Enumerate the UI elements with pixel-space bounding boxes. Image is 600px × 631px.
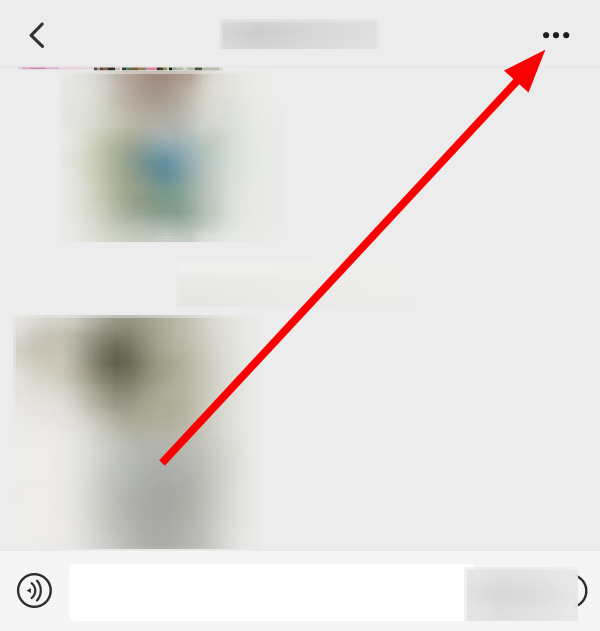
- button[interactable]: More options: [533, 8, 589, 64]
- button[interactable]: Back: [8, 7, 64, 63]
- button[interactable]: [69, 564, 476, 621]
- button[interactable]: Voice message: [11, 567, 57, 613]
- button[interactable]: More: [547, 568, 593, 614]
